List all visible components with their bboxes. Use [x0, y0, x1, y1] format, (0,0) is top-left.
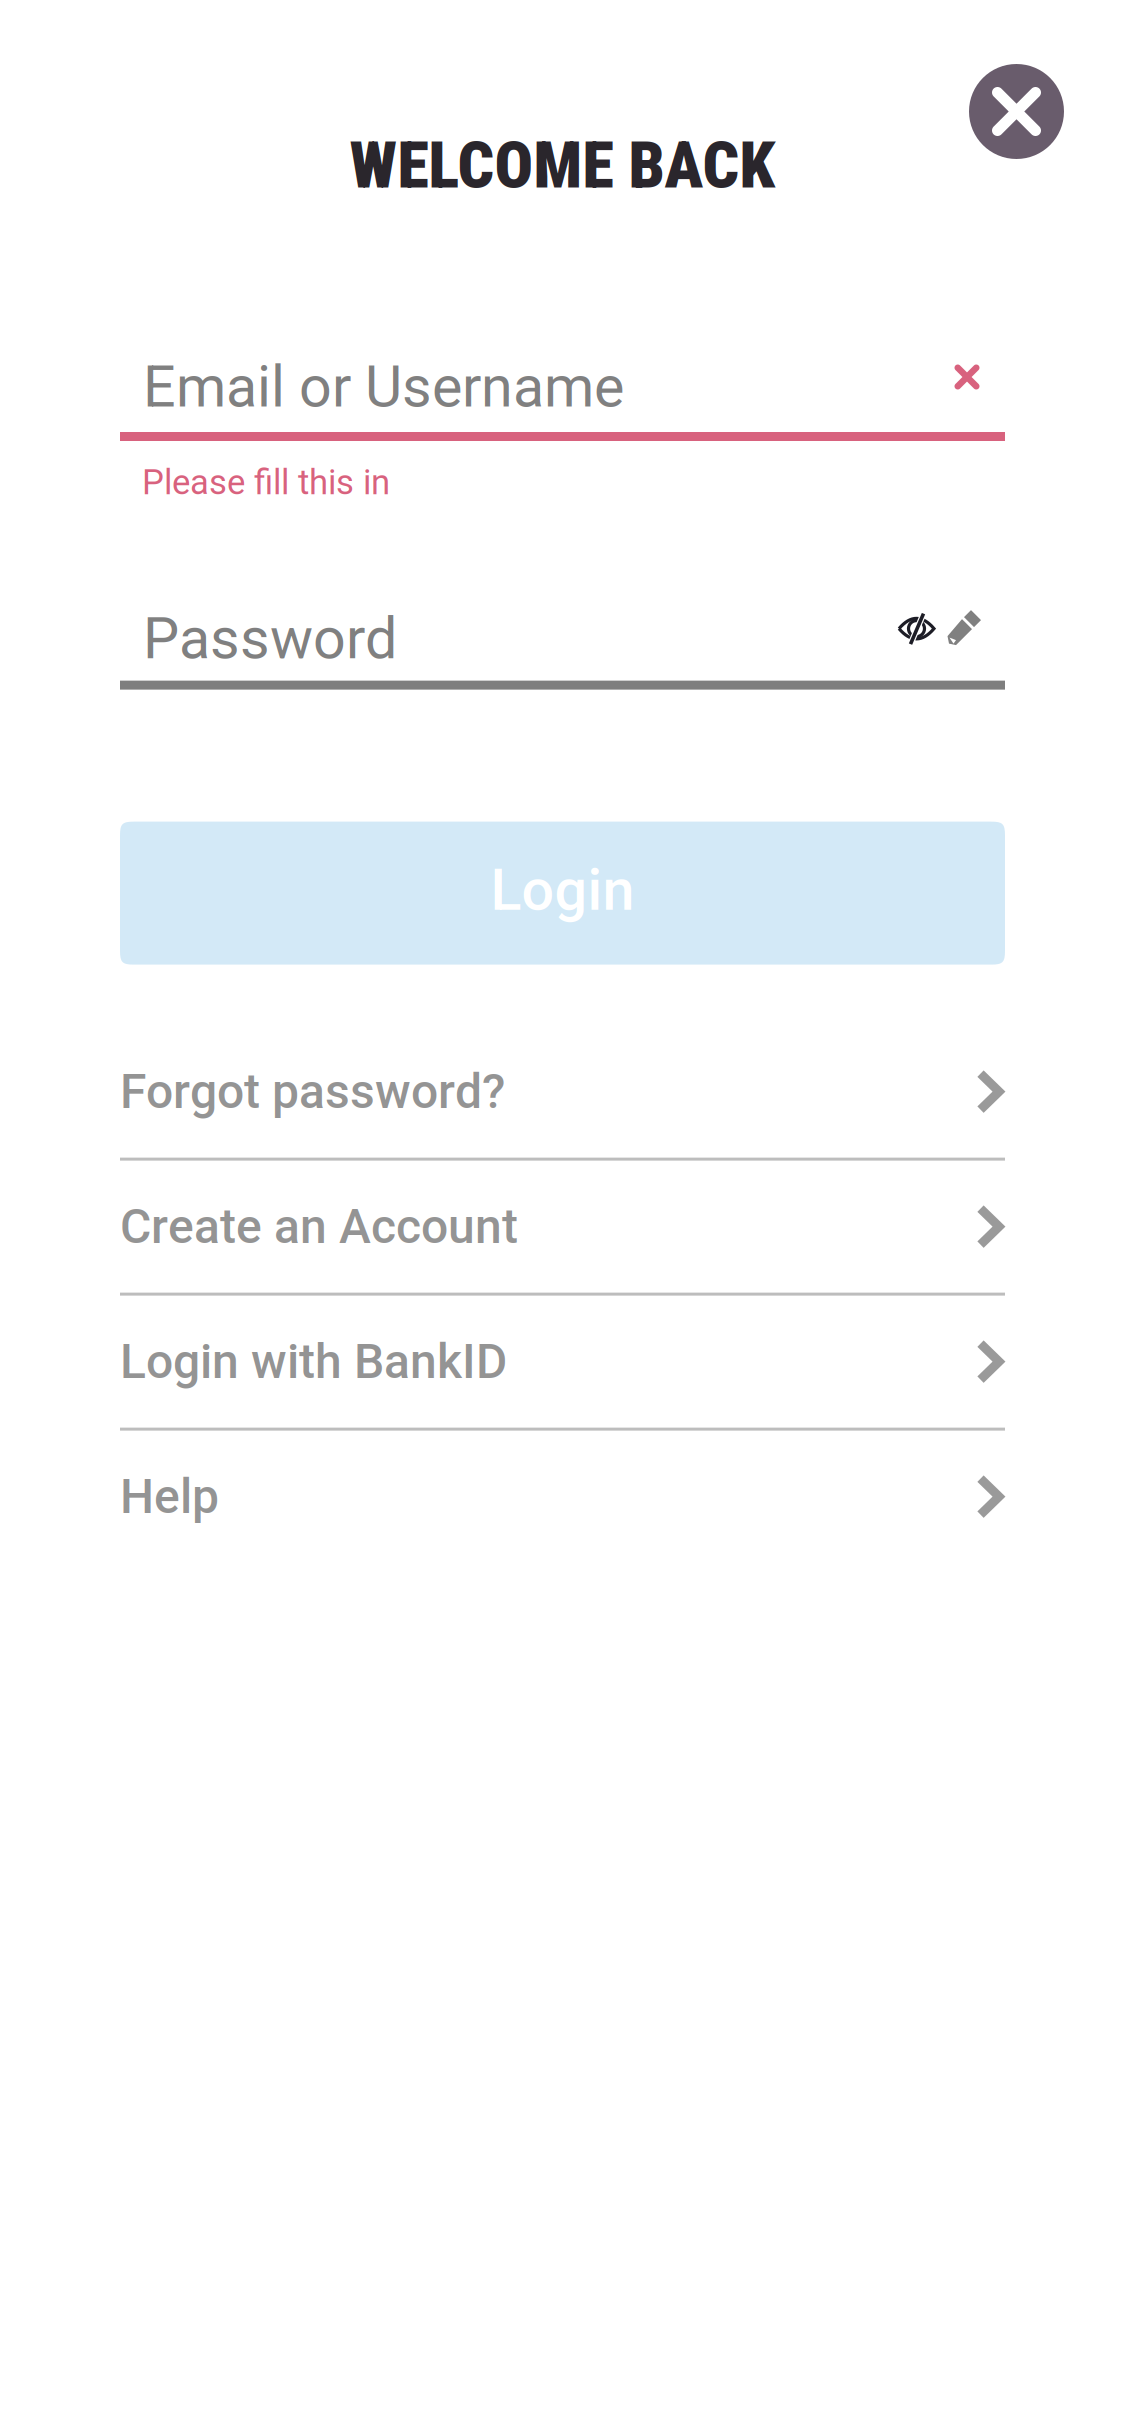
- staticText: Please fill this in: [142, 462, 390, 503]
- staticText: Help: [120, 1468, 219, 1525]
- button[interactable]: Edit password: [948, 609, 982, 668]
- staticText: Password: [143, 605, 397, 672]
- button[interactable]: Close: [969, 64, 1064, 159]
- button[interactable]: Clear text: [947, 364, 987, 410]
- staticText: Email or Username: [143, 353, 624, 421]
- staticText: Login with BankID: [120, 1333, 507, 1390]
- staticText: WELCOME BACK: [349, 128, 775, 203]
- button[interactable]: Create an Account: [120, 1161, 1005, 1293]
- button[interactable]: Forgot password?: [120, 1026, 1005, 1158]
- staticText: Login: [490, 856, 634, 924]
- staticText: Create an Account: [120, 1198, 518, 1255]
- button[interactable]: Login with BankID: [120, 1296, 1005, 1428]
- button[interactable]: Show password: [897, 611, 936, 667]
- button[interactable]: Help: [120, 1431, 1005, 1563]
- staticText: Forgot password?: [120, 1063, 505, 1120]
- button[interactable]: Login: [120, 822, 1005, 965]
